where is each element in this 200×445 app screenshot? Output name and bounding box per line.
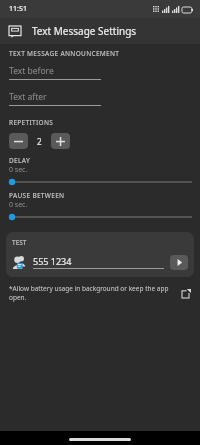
button[interactable]: 555 1234 [33,255,164,269]
staticText: 11:51 [9,4,27,14]
button[interactable]: Play test [170,255,188,270]
staticText: Text before [9,65,54,77]
staticText: REPETITIONS [9,118,54,127]
staticText: 0 sec. [9,165,28,175]
button[interactable]: Choose contact [12,254,28,270]
button[interactable]: Messages [0,18,200,44]
staticText: 555 1234 [33,255,72,267]
button[interactable] [0,176,200,188]
button[interactable]: Text before [9,65,101,80]
staticText: Text after [9,91,47,103]
button[interactable]: Increase [51,133,70,149]
staticText: 0 sec. [9,200,28,210]
staticText: *Allow battery usage in background or ke… [9,284,180,302]
button[interactable]: Open settings [180,287,193,300]
staticText: DELAY [9,156,31,165]
staticText: Text Message Settings [32,24,137,38]
button[interactable] [0,211,200,223]
staticText: TEXT MESSAGE ANNOUNCEMENT [9,49,120,58]
staticText: PAUSE BETWEEN [9,191,65,200]
button[interactable]: Decrease [9,133,28,149]
staticText: TEST [12,238,27,247]
other: Messages [9,25,21,37]
button[interactable]: Text after [9,91,101,106]
staticText: 2 [37,136,42,147]
